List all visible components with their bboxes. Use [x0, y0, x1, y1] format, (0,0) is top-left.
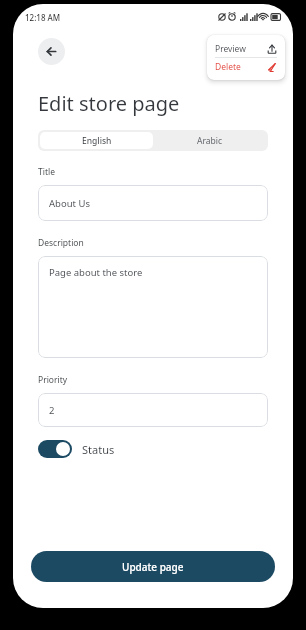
button[interactable]: 2 [38, 393, 268, 427]
button[interactable]: Arabic [153, 132, 266, 149]
button[interactable]: Back [38, 38, 65, 65]
staticText: Title [38, 166, 55, 178]
button[interactable]: About Us [38, 185, 268, 221]
staticText: Description [38, 237, 84, 249]
staticText: 2 [49, 404, 55, 417]
button[interactable]: Preview [215, 40, 277, 57]
staticText: Edit store page [38, 90, 180, 117]
button[interactable]: Page about the store [38, 256, 268, 358]
staticText: Page about the store [49, 266, 143, 279]
staticText: Delete [215, 61, 241, 73]
button[interactable]: English [40, 132, 153, 149]
staticText: Update page [122, 560, 184, 574]
staticText: Priority [38, 374, 68, 386]
staticText: English [82, 135, 112, 147]
staticText: Arabic [197, 135, 223, 147]
button[interactable]: Update page [31, 551, 275, 582]
staticText: About Us [49, 197, 90, 210]
staticText: 12:18 AM [25, 12, 61, 23]
button[interactable]: Delete [215, 58, 277, 75]
staticText: Preview [215, 43, 246, 55]
button[interactable]: Status [38, 440, 115, 458]
staticText: Status [82, 442, 115, 457]
